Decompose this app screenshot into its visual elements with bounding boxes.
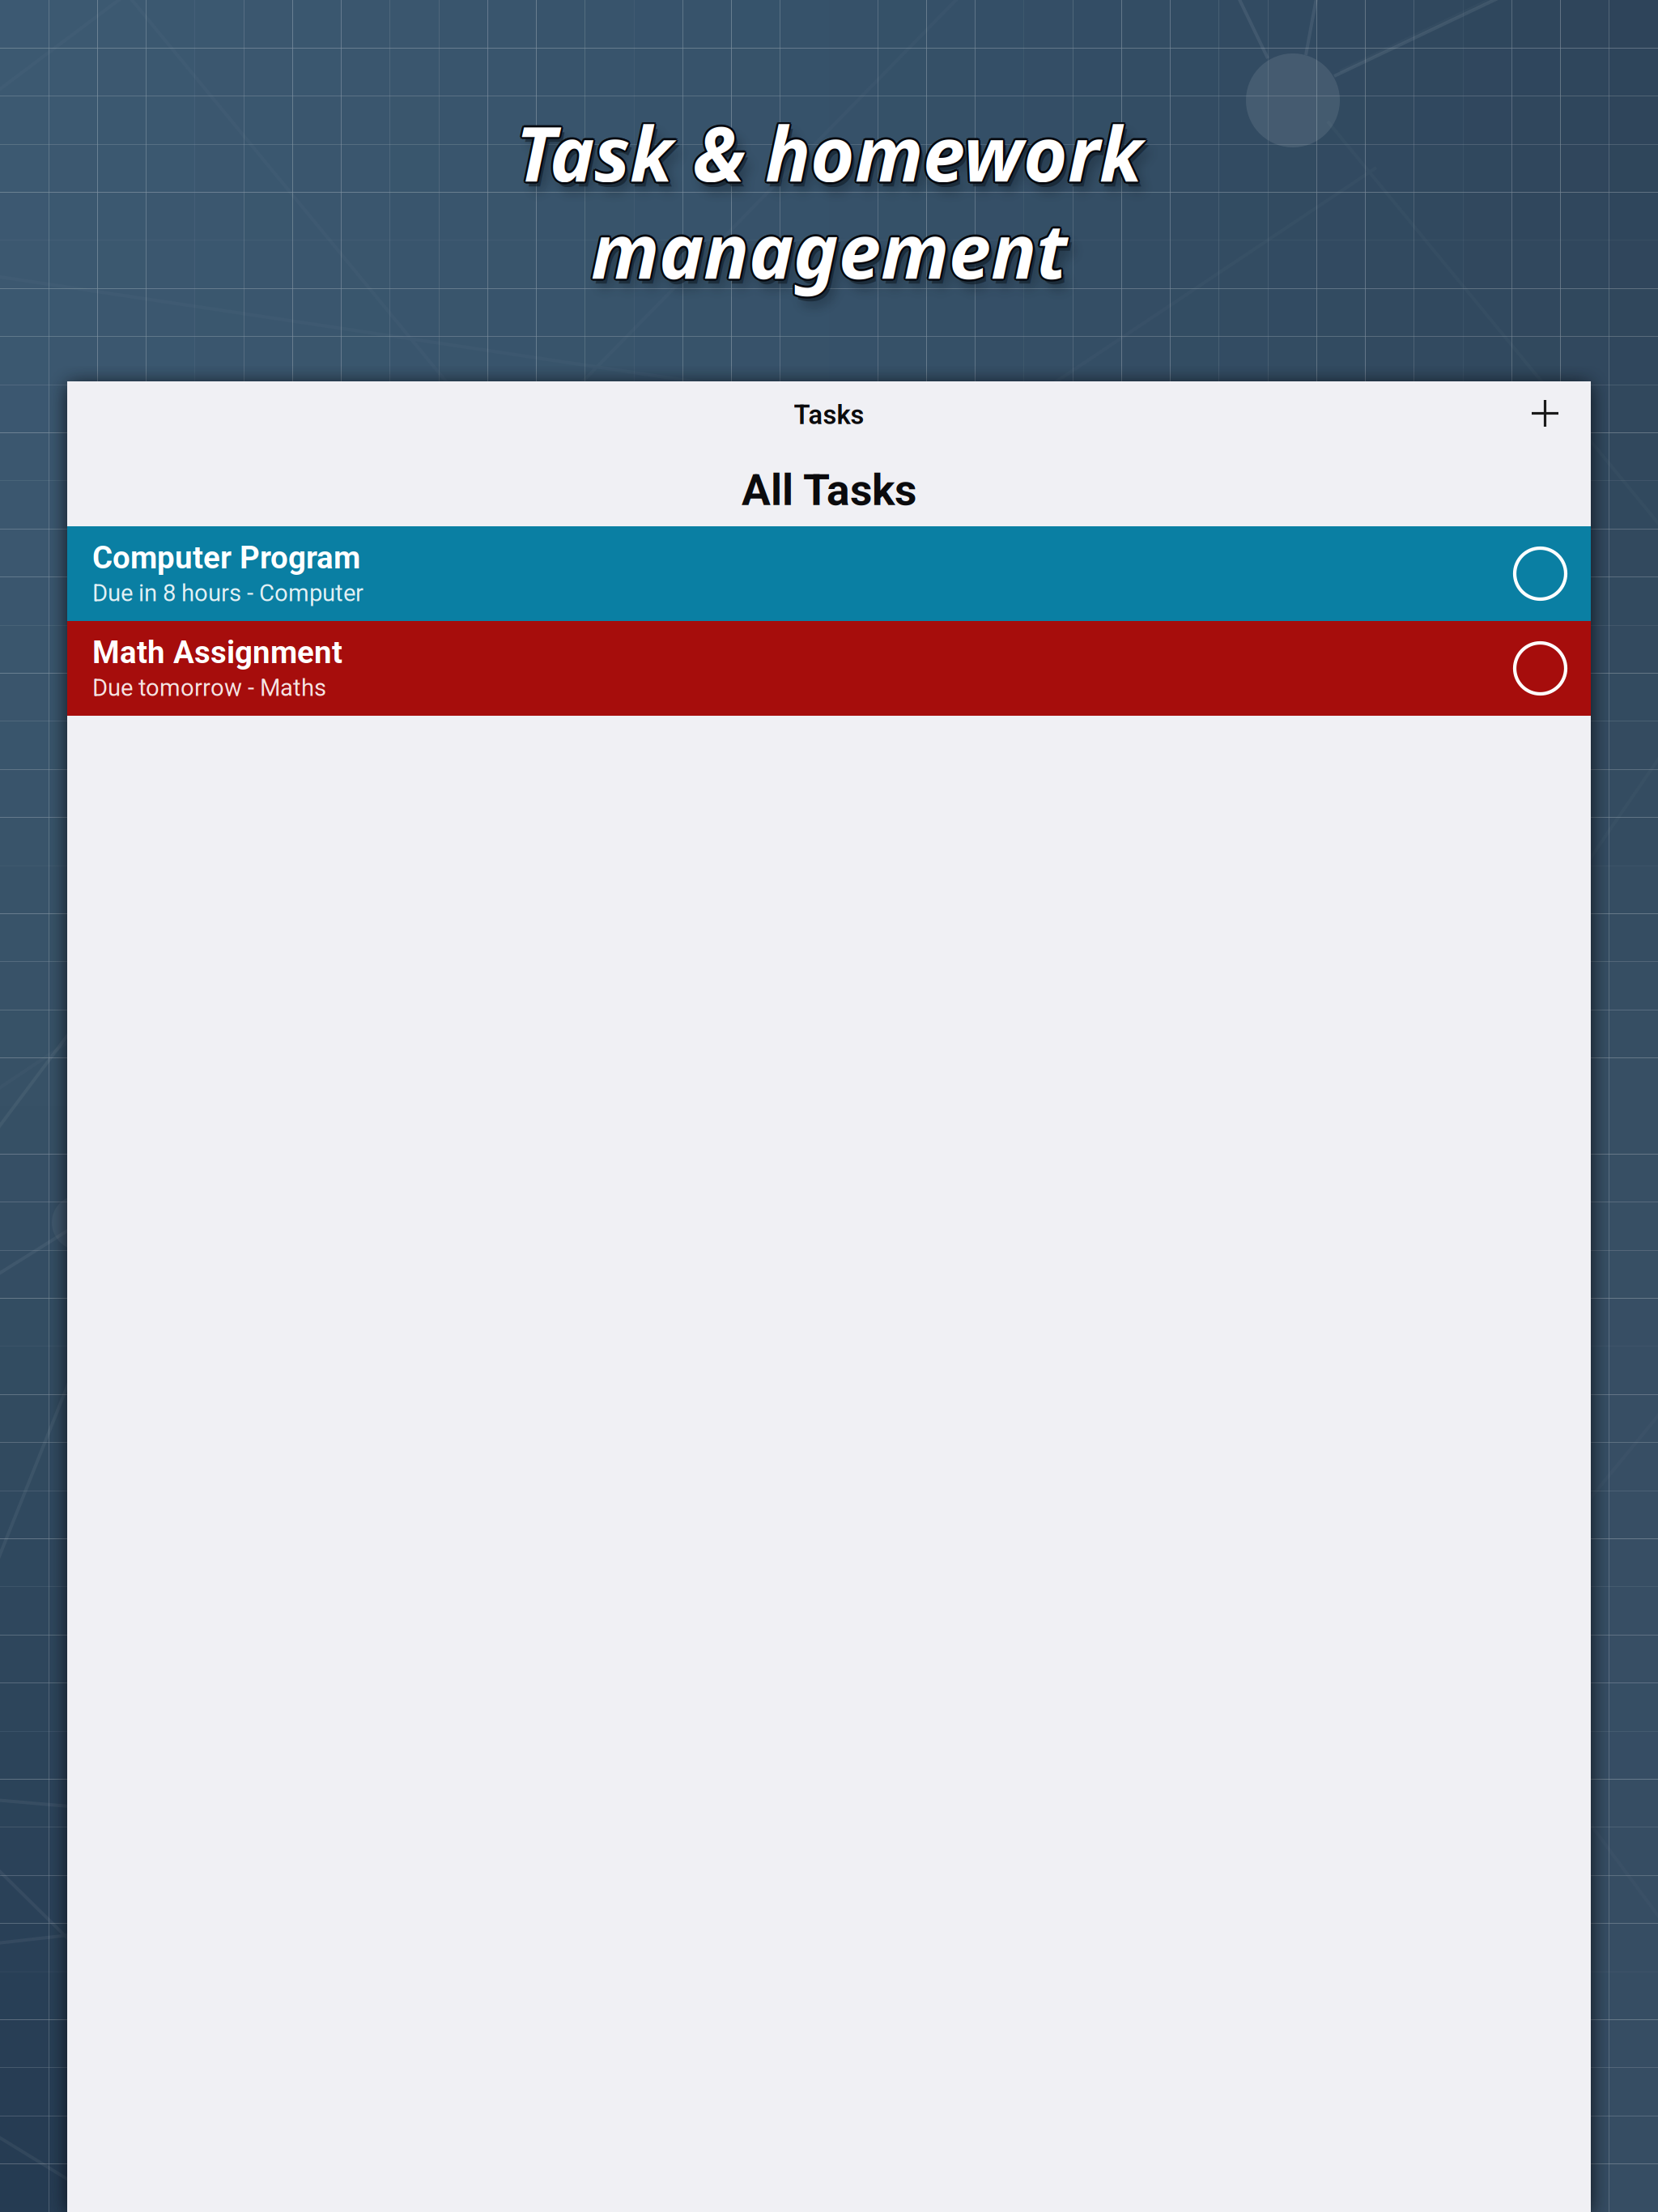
staticText: Computer Program bbox=[92, 540, 360, 576]
staticText: Task & homework bbox=[517, 99, 1144, 202]
staticText: Task & homework bbox=[514, 101, 1140, 204]
staticText: Task & homework bbox=[516, 103, 1142, 206]
button[interactable]: Add task bbox=[1512, 382, 1591, 445]
staticText: management bbox=[589, 196, 1065, 299]
button[interactable]: Math Assignment bbox=[67, 621, 1591, 716]
staticText: Math Assignment bbox=[92, 634, 342, 671]
staticText: management bbox=[593, 196, 1069, 299]
staticText: Due in 8 hours - Computer bbox=[92, 579, 363, 607]
staticText: Task & homework bbox=[517, 102, 1144, 205]
staticText: management bbox=[589, 198, 1065, 301]
staticText: management bbox=[593, 198, 1069, 301]
staticText: management bbox=[594, 203, 1070, 306]
staticText: Task & homework bbox=[518, 101, 1144, 204]
staticText: Tasks bbox=[794, 399, 864, 430]
staticText: Task & homework bbox=[519, 106, 1146, 208]
staticText: management bbox=[591, 196, 1067, 299]
staticText: Task & homework bbox=[516, 101, 1142, 204]
staticText: management bbox=[591, 200, 1067, 303]
staticText: Due tomorrow - Maths bbox=[92, 674, 326, 702]
staticText: All Tasks bbox=[742, 465, 916, 516]
staticText: Task & homework bbox=[516, 99, 1142, 202]
staticText: Task & homework bbox=[514, 102, 1141, 205]
button[interactable]: Computer Program bbox=[67, 526, 1591, 621]
staticText: management bbox=[593, 199, 1069, 302]
staticText: management bbox=[589, 199, 1065, 302]
staticText: management bbox=[591, 198, 1067, 301]
staticText: Task & homework bbox=[514, 99, 1141, 202]
